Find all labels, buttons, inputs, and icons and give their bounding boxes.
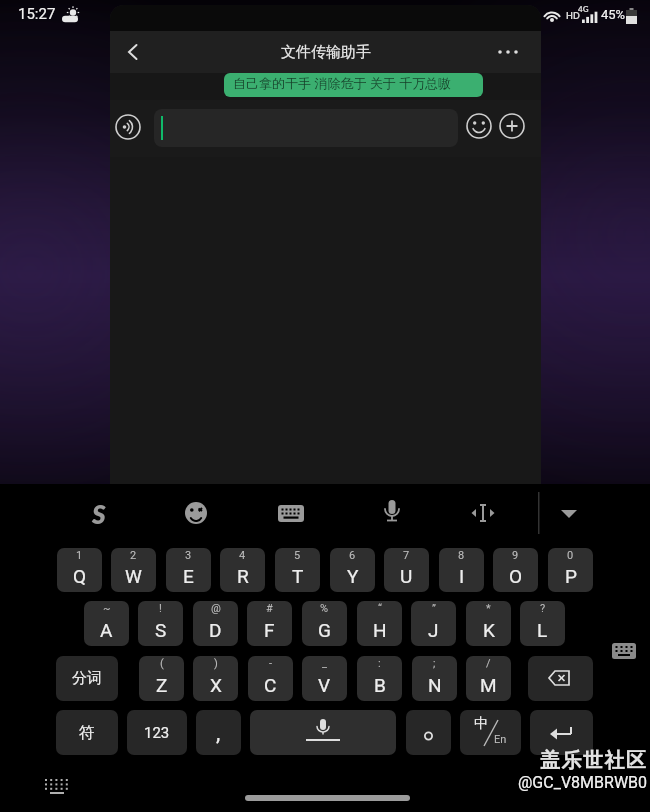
button[interactable]	[609, 640, 639, 662]
button[interactable]	[552, 496, 586, 530]
staticText: 文件传输助手	[281, 43, 371, 62]
staticText: P	[565, 565, 577, 587]
button[interactable]: /	[466, 656, 511, 701]
staticText: /	[486, 657, 491, 670]
staticText: (	[160, 657, 164, 670]
staticText: ;	[433, 657, 436, 670]
button[interactable]	[406, 710, 451, 755]
staticText: 2	[130, 549, 137, 562]
staticText: O	[509, 565, 523, 587]
staticText: *	[486, 602, 491, 615]
button[interactable]: ,	[196, 710, 241, 755]
button[interactable]	[499, 113, 525, 139]
staticText: En	[494, 733, 507, 746]
button[interactable]: 7	[384, 548, 429, 592]
button[interactable]: 中	[460, 710, 521, 755]
staticText: 6	[349, 549, 356, 562]
staticText: Q	[73, 565, 87, 587]
staticText: 45%	[601, 7, 626, 22]
button[interactable]: !	[138, 601, 183, 646]
staticText: _	[322, 657, 327, 670]
staticText: ”	[432, 602, 436, 615]
button[interactable]: 6	[330, 548, 375, 592]
button[interactable]: 2	[111, 548, 156, 592]
staticText: F	[264, 619, 275, 641]
button[interactable]: S	[82, 496, 116, 530]
staticText: Y	[347, 565, 359, 587]
staticText: 1	[76, 549, 83, 562]
button[interactable]: ?	[520, 601, 565, 646]
staticText: 中	[474, 715, 488, 733]
button[interactable]: 123	[127, 710, 187, 755]
button[interactable]: 3	[166, 548, 211, 592]
button[interactable]: _	[302, 656, 347, 701]
button[interactable]: #	[247, 601, 292, 646]
staticText: 4	[239, 549, 246, 562]
staticText: @	[211, 602, 221, 615]
button[interactable]: -	[248, 656, 293, 701]
button[interactable]: 0	[548, 548, 593, 592]
button[interactable]: )	[193, 656, 238, 701]
button[interactable]	[466, 113, 492, 139]
button[interactable]: ”	[411, 601, 456, 646]
staticText: U	[400, 565, 413, 587]
button[interactable]: 4	[220, 548, 265, 592]
button[interactable]: “	[357, 601, 402, 646]
button[interactable]: 1	[57, 548, 102, 592]
button[interactable]: ~	[84, 601, 129, 646]
staticText: ,	[216, 720, 221, 746]
button[interactable]	[118, 37, 146, 67]
staticText: “	[378, 602, 382, 615]
staticText: N	[428, 674, 442, 696]
button[interactable]	[466, 496, 500, 530]
staticText: W	[125, 565, 142, 587]
staticText: )	[214, 657, 218, 670]
staticText: 4G	[578, 4, 589, 14]
button[interactable]	[250, 710, 396, 755]
staticText: %	[320, 602, 329, 615]
staticText: ~	[103, 602, 111, 615]
button[interactable]	[115, 114, 141, 140]
staticText: -	[269, 657, 273, 670]
button[interactable]: %	[302, 601, 347, 646]
staticText: @GC_V8MBRWB0	[518, 773, 648, 792]
staticText: B	[374, 674, 386, 696]
staticText: L	[537, 619, 548, 641]
button[interactable]	[42, 775, 74, 799]
staticText: K	[483, 619, 495, 641]
staticText: ?	[540, 602, 546, 615]
button[interactable]: 5	[275, 548, 320, 592]
staticText: 15:27	[18, 5, 56, 23]
staticText: 盖乐世社区	[540, 748, 648, 772]
button[interactable]: @	[193, 601, 238, 646]
staticText: 7	[403, 549, 410, 562]
staticText: G	[318, 619, 331, 641]
button[interactable]	[375, 494, 409, 532]
button[interactable]	[274, 496, 308, 530]
staticText: Z	[156, 674, 168, 696]
button[interactable]: 8	[439, 548, 484, 592]
staticText: T	[292, 565, 304, 587]
button[interactable]: :	[357, 656, 402, 701]
staticText: 自己拿的干手 消除危于 关于 千万总嗷	[233, 74, 452, 92]
staticText: S	[92, 498, 106, 529]
staticText: 9	[512, 549, 519, 562]
button[interactable]	[179, 496, 213, 530]
button[interactable]: ;	[412, 656, 457, 701]
staticText: A	[100, 619, 113, 641]
button[interactable]: 分词	[56, 656, 118, 701]
staticText: V	[318, 674, 331, 696]
button[interactable]: *	[466, 601, 511, 646]
staticText: E	[183, 565, 194, 587]
staticText: :	[378, 657, 381, 670]
button[interactable]	[154, 109, 458, 147]
button[interactable]: 符	[56, 710, 118, 755]
button[interactable]	[494, 39, 524, 65]
button[interactable]	[528, 656, 593, 701]
staticText: D	[209, 619, 222, 641]
button[interactable]	[530, 710, 593, 755]
staticText: 123	[144, 724, 170, 742]
button[interactable]: 9	[493, 548, 538, 592]
staticText: #	[266, 602, 273, 615]
button[interactable]: (	[139, 656, 184, 701]
